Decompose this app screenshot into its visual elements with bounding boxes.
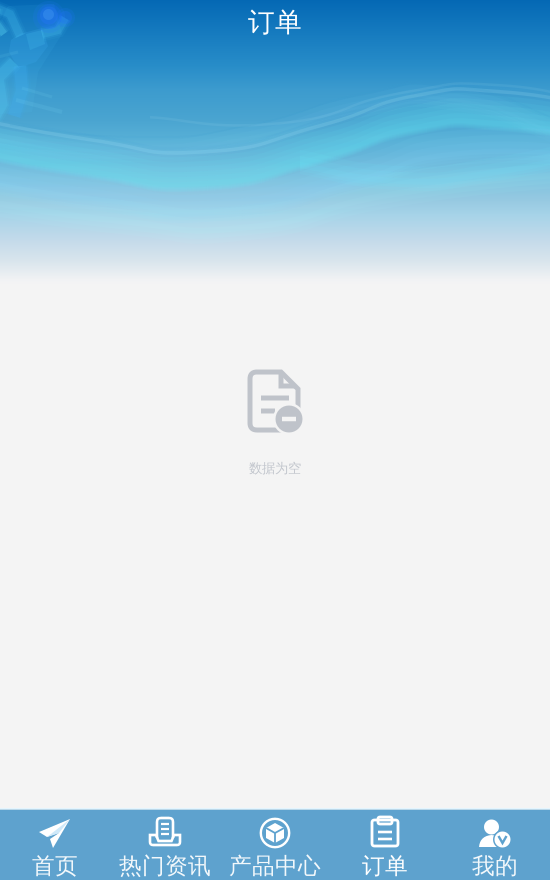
button[interactable]: 订单 [330, 810, 440, 880]
button[interactable]: 热门资讯 [110, 810, 220, 880]
staticText: 我的 [472, 852, 518, 880]
staticText: 订单 [362, 852, 408, 880]
staticText: 首页 [32, 852, 78, 880]
staticText: 数据为空 [249, 460, 301, 476]
button[interactable]: 我的 [440, 810, 550, 880]
staticText: 产品中心 [229, 852, 321, 880]
staticText: 订单 [248, 6, 302, 39]
button[interactable]: 首页 [0, 810, 110, 880]
button[interactable]: 产品中心 [220, 810, 330, 880]
staticText: 热门资讯 [119, 852, 211, 880]
